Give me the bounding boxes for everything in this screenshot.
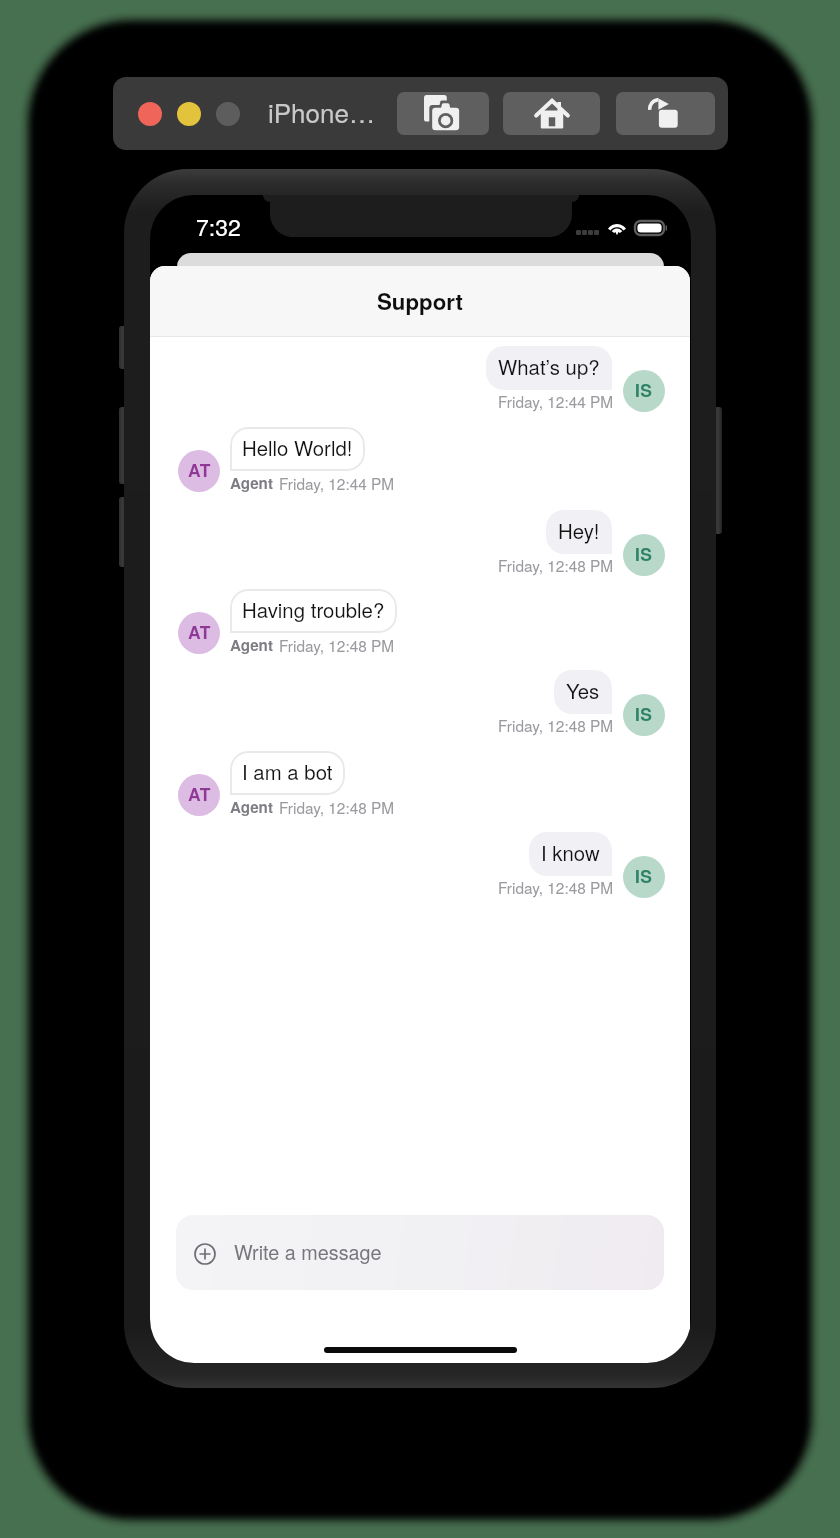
button[interactable]: Your avatar	[623, 856, 665, 898]
staticText: Agent	[230, 799, 273, 817]
button[interactable]: I am a bot	[230, 751, 345, 795]
staticText: AT	[188, 785, 211, 806]
staticText: Friday, 12:48 PM	[279, 799, 395, 817]
staticText: Hey!	[558, 520, 600, 544]
staticText: Agent	[230, 475, 273, 493]
button[interactable]: Your avatar	[623, 370, 665, 412]
staticText: AT	[188, 623, 211, 644]
staticText: Write a message	[234, 1241, 382, 1264]
staticText: IS	[635, 705, 653, 726]
staticText: Having trouble?	[242, 599, 385, 623]
button[interactable]: I know	[529, 832, 612, 876]
button[interactable]: Hey!	[546, 510, 612, 554]
button[interactable]: Agent avatar	[178, 450, 220, 492]
staticText: IS	[635, 381, 653, 402]
staticText: AT	[188, 461, 211, 482]
staticText: Yes	[566, 680, 600, 704]
staticText: Support	[377, 289, 463, 315]
button[interactable]: Close window	[138, 102, 162, 126]
staticText: Agent	[230, 637, 273, 655]
button[interactable]: Write a message	[176, 1215, 664, 1290]
staticText: IS	[635, 867, 653, 888]
button[interactable]: Zoom window	[216, 102, 240, 126]
staticText: I know	[541, 842, 600, 866]
button[interactable]: Agent avatar	[178, 774, 220, 816]
button[interactable]: Agent avatar	[178, 612, 220, 654]
staticText: I am a bot	[242, 761, 333, 785]
button[interactable]: Hello World!	[230, 427, 365, 471]
button[interactable]: Having trouble?	[230, 589, 397, 633]
button[interactable]: Screenshot	[397, 92, 489, 135]
button[interactable]: Home	[503, 92, 600, 135]
staticText: Friday, 12:48 PM	[498, 557, 614, 575]
staticText: Friday, 12:48 PM	[279, 637, 395, 655]
button[interactable]: Minimize window	[177, 102, 201, 126]
staticText: What’s up?	[498, 356, 600, 380]
staticText: Friday, 12:48 PM	[498, 717, 614, 735]
button[interactable]: Your avatar	[623, 534, 665, 576]
staticText: iPhone…	[268, 98, 375, 129]
staticText: Friday, 12:44 PM	[279, 475, 395, 493]
button[interactable]: Yes	[554, 670, 612, 714]
button[interactable]: Rotate	[616, 92, 715, 135]
button[interactable]: Your avatar	[623, 694, 665, 736]
button[interactable]: What’s up?	[486, 346, 612, 390]
staticText: IS	[635, 545, 653, 566]
staticText: Friday, 12:48 PM	[498, 879, 614, 897]
staticText: Hello World!	[242, 437, 353, 461]
staticText: Friday, 12:44 PM	[498, 393, 614, 411]
staticText: 7:32	[196, 214, 241, 241]
